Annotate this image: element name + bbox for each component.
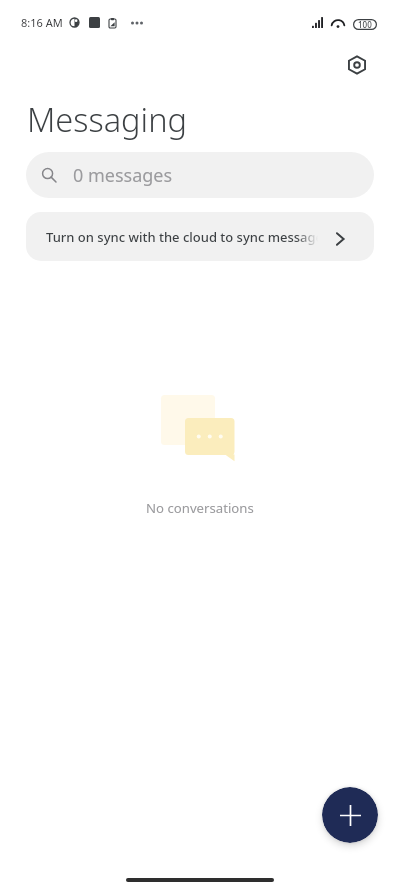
- button[interactable]: Turn on sync with the cloud to sync mess…: [26, 212, 374, 261]
- staticText: Turn on sync with the cloud to sync mess…: [46, 228, 318, 246]
- button[interactable]: Settings: [340, 48, 374, 82]
- staticText: 0 messages: [73, 163, 173, 188]
- button[interactable]: Start new conversation: [322, 787, 378, 843]
- staticText: 8:16 AM: [21, 15, 63, 30]
- staticText: No conversations: [146, 499, 254, 517]
- staticText: 100: [358, 19, 372, 30]
- button[interactable]: 0 messages: [26, 152, 374, 198]
- staticText: Messaging: [27, 97, 187, 141]
